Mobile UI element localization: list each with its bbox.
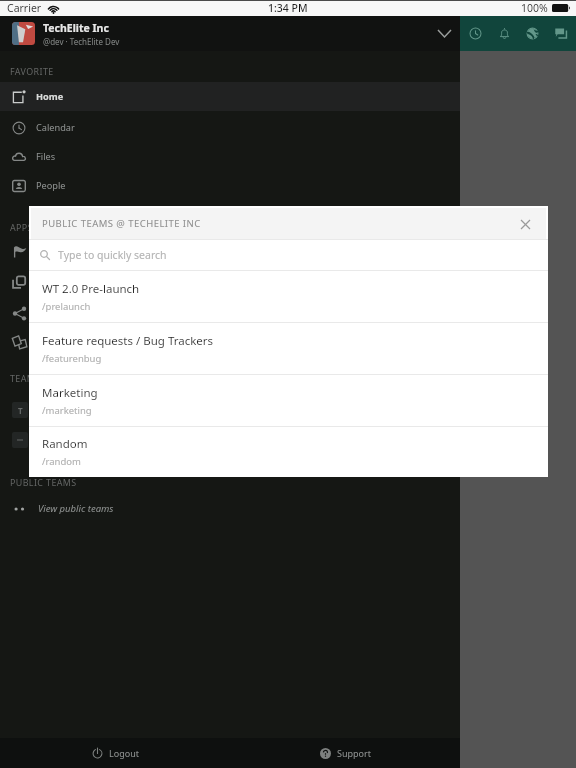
staticText: Calendar	[36, 121, 75, 134]
button[interactable]: Support	[230, 738, 460, 768]
button[interactable]: People	[0, 171, 460, 200]
button[interactable]: Marketing	[29, 375, 548, 426]
staticText: PUBLIC TEAMS @ TECHELITE INC	[42, 217, 201, 230]
button[interactable]: Expand account	[428, 16, 460, 51]
button[interactable]: Copies	[0, 267, 460, 296]
button[interactable]: TechElite Inc	[0, 16, 460, 51]
button[interactable]: WT 2.0 Pre-launch	[29, 271, 548, 322]
button[interactable]: Share	[0, 299, 460, 328]
staticText: /featurenbug	[42, 352, 102, 365]
staticText: APPS	[10, 221, 33, 233]
button[interactable]: Team T	[0, 395, 460, 424]
button[interactable]: Random	[29, 427, 548, 477]
staticText: People	[36, 179, 66, 192]
staticText: 1:34 PM	[268, 1, 308, 15]
staticText: Logout	[109, 747, 139, 759]
button[interactable]: Home	[0, 82, 460, 111]
staticText: T	[18, 405, 23, 416]
staticText: /marketing	[42, 404, 92, 417]
button[interactable]: View public teams	[0, 494, 460, 523]
button[interactable]: Explore	[518, 18, 546, 49]
staticText: View public teams	[38, 502, 114, 515]
button[interactable]: Logout	[0, 738, 230, 768]
staticText: 100%	[521, 1, 548, 15]
staticText: Type to quickly search	[58, 248, 167, 262]
button[interactable]: Messages	[547, 18, 575, 49]
button[interactable]: Layers	[0, 328, 460, 357]
staticText: Carrier	[7, 1, 42, 15]
staticText: TEAMS	[10, 372, 41, 384]
staticText: Support	[337, 747, 371, 759]
button[interactable]: Flags	[0, 236, 460, 265]
button[interactable]: Close	[513, 212, 537, 236]
staticText: /random	[42, 455, 81, 468]
button[interactable]: Files	[0, 142, 460, 171]
button[interactable]: Type to quickly search	[29, 240, 548, 270]
button[interactable]: Recent	[461, 18, 489, 49]
button[interactable]: Team	[0, 425, 460, 454]
staticText: PUBLIC TEAMS	[10, 476, 77, 488]
staticText: Feature requests / Bug Trackers	[42, 333, 214, 349]
staticText: Marketing	[42, 385, 98, 401]
button[interactable]: Calendar	[0, 113, 460, 142]
staticText: FAVORITE	[10, 65, 54, 77]
staticText: Random	[42, 436, 88, 452]
staticText: Home	[36, 90, 64, 103]
button[interactable]: Feature requests / Bug Trackers	[29, 323, 548, 374]
staticText: WT 2.0 Pre-launch	[42, 281, 140, 297]
staticText: /prelaunch	[42, 300, 91, 313]
staticText: Files	[36, 150, 56, 163]
staticText: TechElite Inc	[43, 21, 109, 35]
staticText: @dev · TechElite Dev	[43, 36, 120, 47]
button[interactable]: Notifications	[490, 18, 518, 49]
